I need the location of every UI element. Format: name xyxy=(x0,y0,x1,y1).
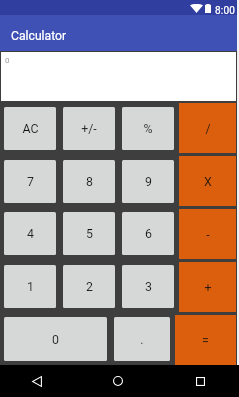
staticText: / xyxy=(205,121,211,136)
button[interactable]: 4 xyxy=(4,212,56,255)
staticText: . xyxy=(140,332,144,347)
staticText: 8 xyxy=(86,174,93,189)
staticText: % xyxy=(143,121,153,136)
staticText: 3 xyxy=(145,279,152,294)
button[interactable]: . xyxy=(114,317,170,361)
button[interactable]: 9 xyxy=(122,160,174,203)
staticText: 9 xyxy=(145,174,152,189)
staticText: 8:00 xyxy=(215,5,236,17)
staticText: Calculator xyxy=(11,29,67,43)
staticText: 6 xyxy=(145,226,152,241)
staticText: +/- xyxy=(81,121,97,136)
button[interactable]: 7 xyxy=(4,160,56,203)
staticText: 2 xyxy=(86,279,93,294)
button[interactable]: 1 xyxy=(4,265,56,308)
staticText: 1 xyxy=(27,279,34,294)
button[interactable]: = xyxy=(175,315,236,365)
staticText: + xyxy=(204,280,212,295)
button[interactable]: X xyxy=(179,156,236,206)
staticText: 5 xyxy=(86,226,93,241)
button[interactable]: 6 xyxy=(122,212,174,255)
button[interactable]: Back xyxy=(17,365,57,397)
button[interactable]: 2 xyxy=(63,265,115,308)
button[interactable]: 5 xyxy=(63,212,115,255)
button[interactable]: 8 xyxy=(63,160,115,203)
button[interactable]: - xyxy=(179,209,236,259)
button[interactable]: +/- xyxy=(63,107,115,150)
staticText: 7 xyxy=(27,174,34,189)
staticText: 0 xyxy=(52,332,59,347)
button[interactable]: + xyxy=(179,262,236,312)
staticText: - xyxy=(206,227,210,242)
button[interactable]: Recents xyxy=(180,365,220,397)
button[interactable]: / xyxy=(179,103,236,153)
staticText: = xyxy=(202,333,209,348)
button[interactable]: Home xyxy=(98,365,138,397)
button[interactable]: 3 xyxy=(122,265,174,308)
button[interactable]: AC xyxy=(4,107,56,150)
button[interactable]: % xyxy=(122,107,174,150)
staticText: 0 xyxy=(5,56,10,65)
button[interactable]: 0 xyxy=(4,317,107,361)
staticText: 4 xyxy=(27,226,34,241)
staticText: X xyxy=(204,174,212,189)
staticText: AC xyxy=(22,121,39,136)
